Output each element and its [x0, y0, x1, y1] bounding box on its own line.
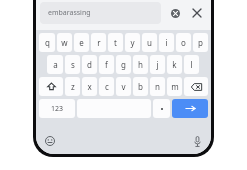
button[interactable]: e	[74, 33, 89, 52]
button[interactable]: Backspace	[184, 77, 208, 96]
staticText: x	[87, 81, 92, 92]
staticText: w	[61, 37, 68, 48]
button[interactable]: Shift	[39, 77, 63, 96]
button[interactable]: u	[142, 33, 157, 52]
button[interactable]: x	[82, 77, 97, 96]
button[interactable]: h	[133, 55, 148, 74]
button[interactable]: c	[99, 77, 114, 96]
button[interactable]: embarassing	[40, 2, 161, 24]
staticText: q	[45, 37, 50, 48]
button[interactable]: p	[193, 33, 208, 52]
staticText: p	[198, 37, 203, 48]
button[interactable]: Voice input	[189, 133, 205, 149]
staticText: u	[147, 37, 152, 48]
button[interactable]: w	[57, 33, 72, 52]
staticText: s	[71, 59, 75, 70]
button[interactable]: j	[150, 55, 165, 74]
button[interactable]: Close	[187, 3, 207, 23]
button[interactable]: q	[39, 33, 55, 52]
button[interactable]: 123	[39, 99, 75, 118]
staticText: o	[181, 37, 186, 48]
button[interactable]: Search	[172, 99, 208, 118]
button[interactable]: f	[99, 55, 114, 74]
button[interactable]: b	[133, 77, 148, 96]
button[interactable]: Period	[153, 99, 170, 118]
staticText: embarassing	[48, 8, 91, 18]
staticText: z	[71, 81, 75, 92]
button[interactable]: v	[116, 77, 131, 96]
staticText: b	[138, 81, 143, 92]
button[interactable]: Emoji	[42, 133, 58, 149]
button[interactable]: s	[65, 55, 80, 74]
button[interactable]: t	[108, 33, 123, 52]
button[interactable]: g	[116, 55, 131, 74]
button[interactable]: y	[125, 33, 140, 52]
button[interactable]: l	[184, 55, 199, 74]
staticText: e	[79, 37, 84, 48]
button[interactable]: d	[82, 55, 97, 74]
button[interactable]: o	[176, 33, 191, 52]
button[interactable]: a	[47, 55, 63, 74]
button[interactable]: n	[150, 77, 165, 96]
button[interactable]: r	[91, 33, 106, 52]
staticText: t	[114, 37, 117, 48]
staticText: r	[97, 37, 101, 48]
staticText: a	[53, 59, 58, 70]
staticText: n	[155, 81, 160, 92]
staticText: h	[138, 59, 143, 70]
staticText: j	[156, 59, 159, 70]
staticText: g	[121, 59, 126, 70]
button[interactable]: i	[159, 33, 174, 52]
staticText: k	[172, 59, 177, 70]
staticText: y	[130, 37, 135, 48]
staticText: 123	[51, 104, 64, 114]
staticText: f	[105, 59, 108, 70]
staticText: m	[171, 81, 179, 92]
staticText: c	[105, 81, 109, 92]
staticText: i	[165, 37, 168, 48]
button[interactable]: z	[65, 77, 80, 96]
button[interactable]: Clear text	[166, 4, 184, 22]
button[interactable]: k	[167, 55, 182, 74]
button[interactable]: m	[167, 77, 182, 96]
staticText: d	[87, 59, 92, 70]
staticText: l	[190, 59, 193, 70]
staticText: v	[121, 81, 126, 92]
